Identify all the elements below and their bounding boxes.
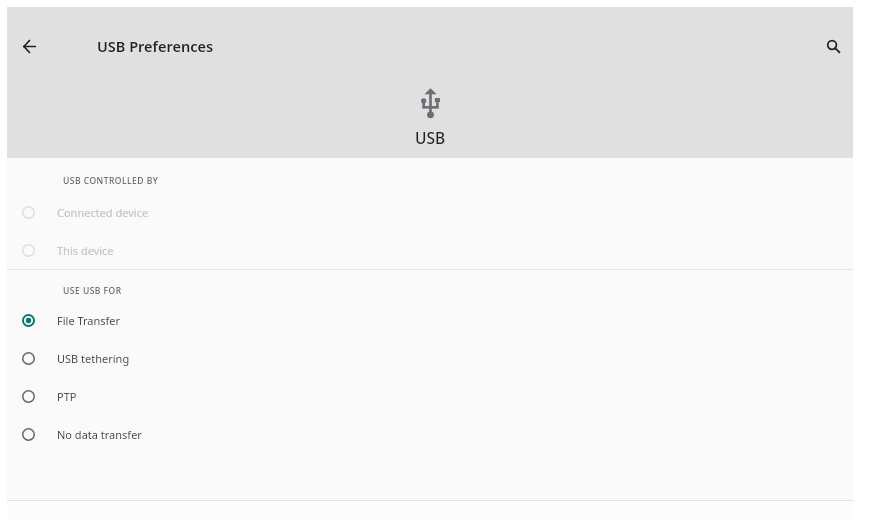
staticText: USE USB FOR bbox=[63, 285, 122, 297]
button[interactable]: Connected device bbox=[7, 193, 853, 231]
button[interactable]: This device bbox=[7, 231, 853, 269]
staticText: No data transfer bbox=[57, 427, 142, 442]
button[interactable]: No data transfer bbox=[7, 415, 853, 453]
staticText: PTP bbox=[57, 389, 77, 404]
button[interactable]: Search bbox=[813, 26, 853, 66]
button[interactable]: USB tethering bbox=[7, 339, 853, 377]
staticText: USB Preferences bbox=[97, 36, 214, 56]
staticText: File Transfer bbox=[57, 313, 121, 328]
staticText: This device bbox=[57, 243, 114, 258]
button[interactable]: File Transfer bbox=[7, 301, 853, 339]
staticText: Connected device bbox=[57, 205, 149, 220]
button[interactable]: PTP bbox=[7, 377, 853, 415]
staticText: USB CONTROLLED BY bbox=[63, 175, 159, 187]
staticText: USB tethering bbox=[57, 351, 130, 366]
staticText: USB bbox=[415, 127, 446, 148]
button[interactable]: Back bbox=[9, 26, 49, 66]
